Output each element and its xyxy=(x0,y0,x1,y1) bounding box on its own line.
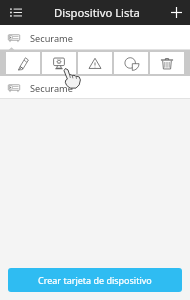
staticText: Securame xyxy=(30,82,73,95)
staticText: Dispositivo Lista xyxy=(54,5,140,20)
button[interactable]: Crear tarjeta de dispositivo xyxy=(8,268,182,292)
button[interactable]: Edit xyxy=(6,52,40,74)
button[interactable]: Add xyxy=(163,0,190,25)
staticText: Securame xyxy=(30,32,73,45)
staticText: Crear tarjeta de dispositivo xyxy=(38,274,152,286)
button[interactable]: Menu xyxy=(0,0,31,25)
button[interactable]: Securame xyxy=(0,78,190,98)
button[interactable]: Delete xyxy=(150,52,184,74)
button[interactable]: Statistics xyxy=(114,52,148,74)
button[interactable]: Alert xyxy=(78,52,112,74)
button[interactable]: Securame xyxy=(0,27,190,49)
button[interactable]: Configure xyxy=(42,52,76,74)
